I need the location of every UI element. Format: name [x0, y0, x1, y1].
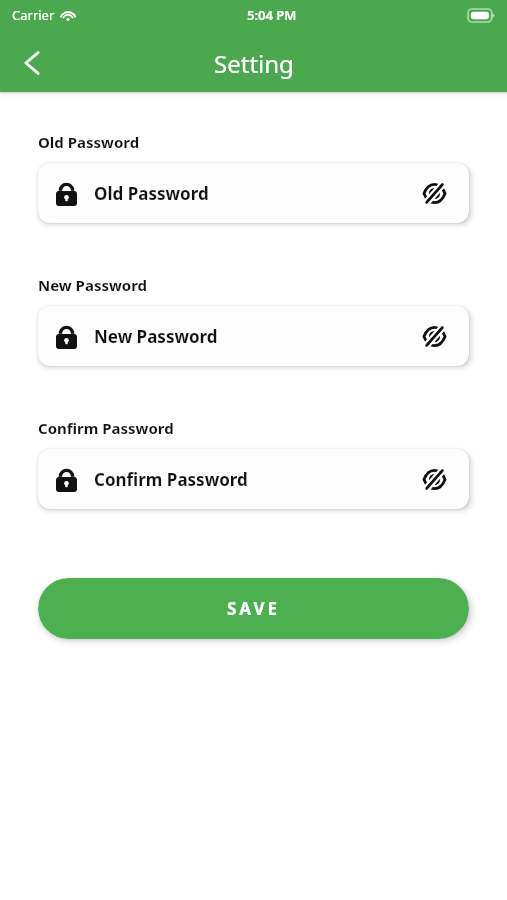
- button[interactable]: Back: [8, 39, 56, 87]
- button[interactable]: Show password: [417, 176, 451, 210]
- button[interactable]: Show password: [417, 462, 451, 496]
- staticText: SAVE: [227, 597, 281, 620]
- staticText: Carrier: [12, 6, 55, 24]
- staticText: New Password: [38, 275, 148, 295]
- button[interactable]: Show password: [417, 319, 451, 353]
- button[interactable]: Confirm Password: [38, 449, 469, 509]
- staticText: Old Password: [38, 132, 140, 152]
- button[interactable]: Old Password: [38, 163, 469, 223]
- button[interactable]: SAVE: [38, 578, 469, 639]
- staticText: Confirm Password: [38, 418, 174, 438]
- staticText: New Password: [94, 325, 218, 348]
- staticText: Setting: [214, 47, 294, 80]
- staticText: Old Password: [94, 182, 209, 205]
- button[interactable]: New Password: [38, 306, 469, 366]
- staticText: 5:04 PM: [247, 6, 297, 24]
- staticText: Confirm Password: [94, 468, 248, 491]
